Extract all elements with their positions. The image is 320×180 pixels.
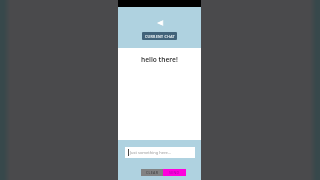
staticText: hello there!: [141, 55, 178, 64]
staticText: CLEAR: [146, 170, 159, 175]
staticText: CURRENT CHAT: [145, 34, 175, 39]
button[interactable]: SEND: [163, 169, 186, 176]
button[interactable]: Previous: [155, 18, 165, 28]
staticText: SEND: [169, 170, 180, 175]
staticText: Just something here...: [130, 150, 171, 155]
button[interactable]: Just something here...: [125, 147, 195, 158]
button[interactable]: CLEAR: [141, 169, 163, 176]
button[interactable]: CURRENT CHAT: [142, 32, 177, 40]
